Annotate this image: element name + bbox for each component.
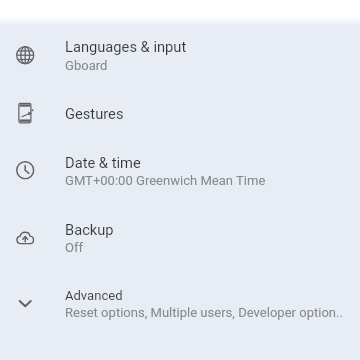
button[interactable]: Gestures: [0, 88, 360, 137]
staticText: Date & time: [65, 154, 141, 171]
staticText: Advanced: [65, 288, 123, 303]
staticText: Reset options, Multiple users, Developer…: [65, 305, 343, 320]
staticText: Backup: [65, 221, 114, 238]
button[interactable]: Date and time: [0, 137, 360, 203]
staticText: Off: [65, 240, 84, 255]
other: Gestures: [12, 100, 38, 126]
other: Expand advanced settings: [12, 291, 38, 317]
other: Backup: [12, 224, 38, 250]
button[interactable]: Backup: [0, 203, 360, 270]
staticText: Gestures: [65, 105, 124, 122]
button[interactable]: Languages and input: [0, 22, 360, 88]
other: Date and time: [12, 157, 38, 183]
other: Languages and input: [12, 42, 38, 68]
staticText: Languages & input: [65, 38, 187, 55]
staticText: GMT+00:00 Greenwich Mean Time: [65, 173, 266, 188]
button[interactable]: Expand advanced settings: [0, 270, 360, 337]
staticText: Gboard: [65, 58, 108, 73]
